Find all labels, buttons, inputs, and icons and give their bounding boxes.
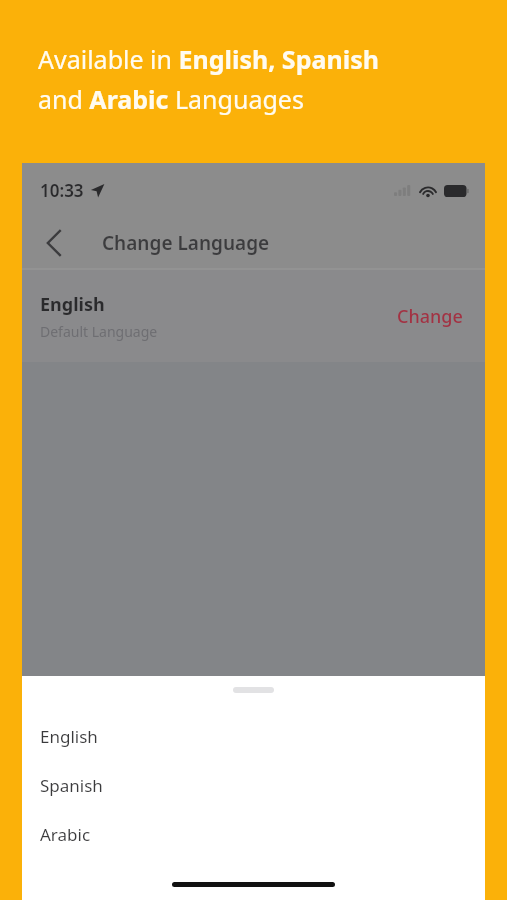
button[interactable]: English [22, 270, 485, 362]
staticText: English [40, 725, 98, 748]
button[interactable]: Back [32, 221, 76, 265]
staticText: English [40, 292, 105, 317]
staticText: Available in English, Spanish [38, 42, 379, 76]
staticText: Default Language [40, 322, 158, 341]
staticText: Arabic [40, 823, 91, 846]
button[interactable]: English [22, 712, 485, 761]
staticText: Spanish [40, 774, 103, 797]
staticText: and Arabic Languages [38, 82, 304, 116]
button[interactable]: Arabic [22, 810, 485, 859]
staticText: Change [397, 304, 463, 329]
button[interactable]: Spanish [22, 761, 485, 810]
staticText: Change Language [102, 230, 270, 256]
staticText: 10:33 [40, 179, 84, 202]
button[interactable]: Change [393, 298, 467, 335]
